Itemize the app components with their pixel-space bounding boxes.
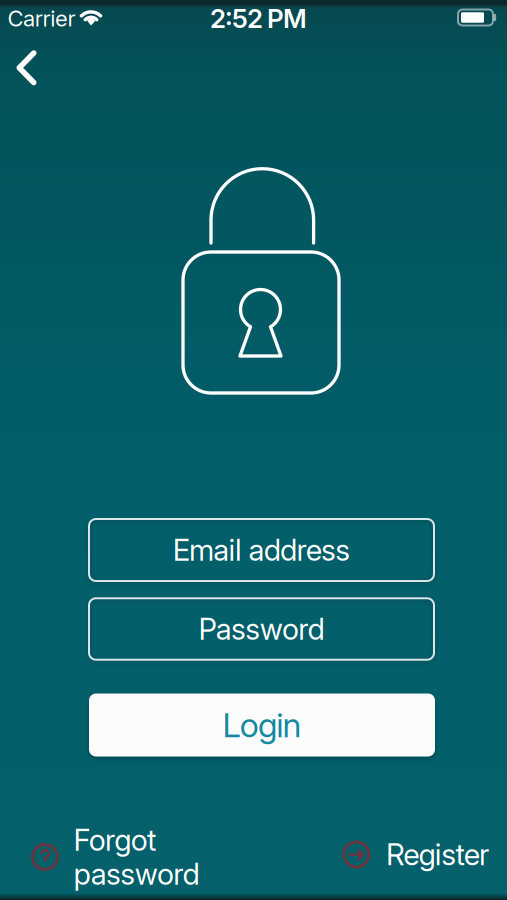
staticText: Email address [173,532,350,568]
staticText: Register [386,837,489,872]
staticText: Forgot [73,822,156,858]
button[interactable]: Login [89,693,435,756]
button[interactable]: Forgot [32,822,200,892]
button[interactable]: Register [344,837,489,872]
staticText: Password [198,611,325,647]
staticText: Carrier [7,5,76,32]
button[interactable]: Email address [89,519,434,581]
button[interactable]: Back [7,41,46,94]
button[interactable]: Password [89,598,434,660]
staticText: 2:52 PM [210,3,307,34]
staticText: Login [222,705,302,745]
staticText: password [73,856,200,892]
